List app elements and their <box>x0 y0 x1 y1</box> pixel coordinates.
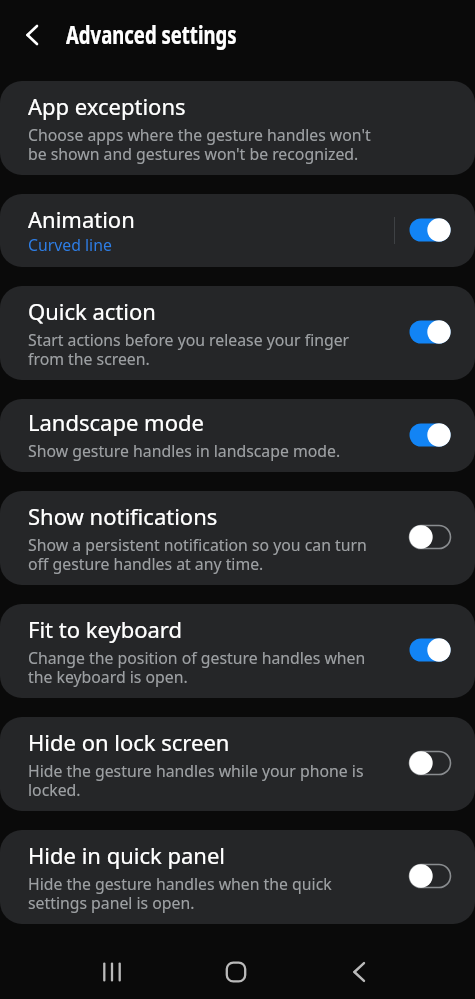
button[interactable]: On <box>404 634 456 666</box>
button[interactable]: Recent apps <box>84 945 140 999</box>
button[interactable]: Landscape mode <box>0 399 475 472</box>
staticText: Choose apps where the gesture handles wo… <box>28 124 371 164</box>
button[interactable]: Quick action <box>0 286 475 380</box>
button[interactable]: On <box>404 419 456 451</box>
staticText: Show gesture handles in landscape mode. <box>28 440 341 462</box>
button[interactable]: Off <box>404 521 456 553</box>
staticText: Hide the gesture handles while your phon… <box>28 760 364 800</box>
staticText: Hide the gesture handles when the quick … <box>28 873 332 913</box>
staticText: Hide in quick panel <box>28 840 226 870</box>
staticText: Start actions before you release your fi… <box>28 329 350 369</box>
staticText: Curved line <box>28 234 112 256</box>
button[interactable]: On <box>404 214 456 246</box>
button[interactable]: Home <box>208 945 264 999</box>
button[interactable]: Back <box>8 11 56 59</box>
button[interactable]: Back <box>331 945 387 999</box>
button[interactable]: App exceptions <box>0 81 475 175</box>
button[interactable]: Off <box>404 860 456 892</box>
staticText: Show notifications <box>28 501 218 531</box>
staticText: Landscape mode <box>28 407 204 437</box>
button[interactable]: Show notifications <box>0 491 475 585</box>
staticText: Change the position of gesture handles w… <box>28 647 366 687</box>
staticText: Fit to keyboard <box>28 614 183 644</box>
staticText: Advanced settings <box>66 18 237 51</box>
button[interactable]: Hide on lock screen <box>0 717 475 811</box>
button[interactable]: Animation <box>0 194 475 267</box>
staticText: Quick action <box>28 296 156 326</box>
staticText: Animation <box>28 204 135 234</box>
button[interactable]: Off <box>404 747 456 779</box>
button[interactable]: On <box>404 316 456 348</box>
button[interactable]: Fit to keyboard <box>0 604 475 698</box>
staticText: App exceptions <box>28 91 186 121</box>
staticText: Show a persistent notification so you ca… <box>28 534 367 574</box>
button[interactable]: Hide in quick panel <box>0 830 475 924</box>
staticText: Hide on lock screen <box>28 727 230 757</box>
